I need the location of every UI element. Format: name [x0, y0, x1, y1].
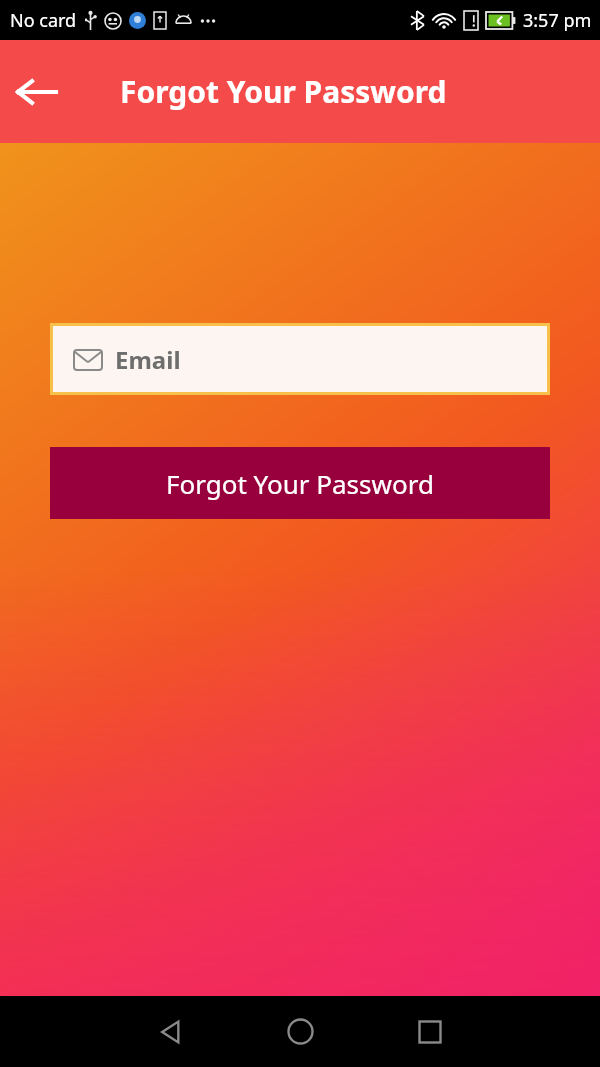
staticText: Email [115, 343, 181, 376]
staticText: Forgot Your Password [166, 466, 434, 501]
button[interactable]: Home [258, 996, 342, 1067]
button[interactable]: Forgot Your Password [50, 447, 550, 519]
button[interactable]: Back [6, 62, 66, 122]
button[interactable]: Back [128, 996, 212, 1067]
staticText: Forgot Your Password [120, 71, 447, 112]
button[interactable]: Email [53, 326, 547, 392]
button[interactable]: Recents [388, 996, 472, 1067]
staticText: No card [10, 8, 77, 33]
staticText: 3:57 pm [523, 8, 592, 33]
